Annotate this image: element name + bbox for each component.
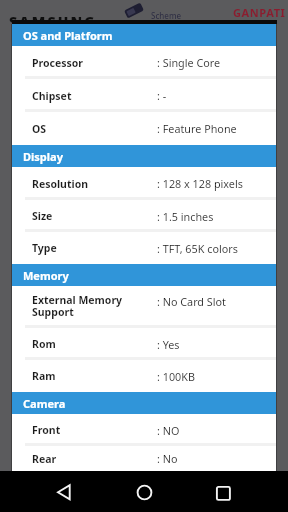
staticText: Display xyxy=(23,149,63,164)
button[interactable] xyxy=(203,471,243,512)
staticText: : - xyxy=(157,88,167,103)
staticText: : NO xyxy=(157,423,180,438)
staticText: Rear xyxy=(32,452,57,466)
staticText: : TFT, 65K colors xyxy=(157,241,238,256)
button[interactable] xyxy=(124,471,164,512)
staticText: SAMSUNG xyxy=(9,12,97,24)
staticText: Memory xyxy=(23,268,69,283)
staticText: Processor xyxy=(32,56,84,70)
staticText: Resolution xyxy=(32,177,89,191)
staticText: Type xyxy=(32,241,57,255)
staticText: : 128 x 128 pixels xyxy=(157,176,243,191)
staticText: External Memory Support xyxy=(32,293,123,319)
staticText: OS xyxy=(32,122,47,136)
staticText: GANPATI xyxy=(233,5,286,20)
staticText: : Yes xyxy=(157,337,180,352)
staticText: Size xyxy=(32,209,53,223)
button[interactable] xyxy=(44,471,84,512)
staticText: Camera xyxy=(23,396,66,411)
staticText: : No xyxy=(157,451,178,466)
staticText: : 100KB xyxy=(157,369,195,384)
staticText: OS and Platform xyxy=(23,28,113,43)
staticText: : No Card Slot xyxy=(157,294,226,309)
staticText: : Single Core xyxy=(157,55,221,70)
staticText: Ram xyxy=(32,369,56,383)
staticText: : 1.5 inches xyxy=(157,209,214,224)
staticText: Rom xyxy=(32,337,56,351)
staticText: Scheme xyxy=(151,10,182,21)
staticText: Front xyxy=(32,423,61,437)
button[interactable]: SAMSUNG xyxy=(0,0,288,24)
staticText: : Feature Phone xyxy=(157,121,237,136)
staticText: Chipset xyxy=(32,89,72,103)
